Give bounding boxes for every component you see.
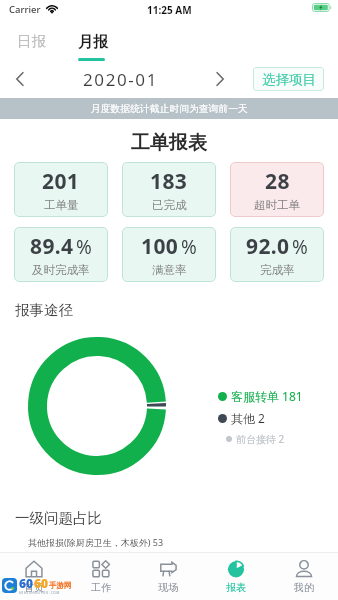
staticText: 超时工单	[254, 198, 300, 212]
button[interactable]: 报表	[202, 553, 270, 600]
staticText: 其他报损(除厨房卫生，木板外) 53	[28, 536, 164, 548]
staticText: 92.0	[246, 232, 290, 261]
staticText: 201	[42, 167, 80, 196]
staticText: 89.4	[30, 232, 74, 261]
button[interactable]: 28	[230, 162, 324, 217]
button[interactable]: 100	[122, 227, 216, 282]
staticText: 工单量	[44, 198, 79, 212]
button[interactable]: 现场	[134, 553, 202, 600]
staticText: 100	[141, 232, 179, 261]
staticText: 183	[150, 167, 188, 196]
button[interactable]: 201	[14, 162, 108, 217]
button[interactable]: 首页	[0, 553, 67, 600]
button[interactable]: 日报	[0, 26, 63, 56]
button[interactable]: 92.0	[230, 227, 324, 282]
staticText: %	[76, 234, 92, 260]
staticText: 6 0 6 0 S H O U Y O U . C O M	[19, 591, 60, 595]
staticText: 现场	[158, 581, 178, 594]
button[interactable]: 我的	[270, 553, 338, 600]
button[interactable]: 上一月	[7, 66, 33, 92]
button[interactable]: 工作	[67, 553, 134, 600]
button[interactable]: 183	[122, 162, 216, 217]
staticText: 客服转单 181	[231, 388, 303, 404]
staticText: 11:25 AM	[147, 3, 192, 17]
staticText: 我的	[294, 581, 314, 594]
staticText: 首页	[24, 581, 44, 594]
staticText: 报表	[226, 581, 246, 594]
staticText: 工作	[91, 581, 111, 594]
staticText: 月度数据统计截止时间为查询前一天	[91, 103, 248, 115]
staticText: 完成率	[260, 263, 295, 277]
button[interactable]: 月报	[61, 27, 124, 57]
staticText: 满意率	[152, 263, 187, 277]
button[interactable]: 下一月	[207, 66, 233, 92]
staticText: 前台接待 2	[236, 432, 285, 446]
staticText: 其他 2	[231, 410, 265, 426]
staticText: 报事途径	[15, 301, 73, 319]
staticText: 工单报表	[131, 131, 207, 155]
button[interactable]: 89.4	[14, 227, 108, 282]
staticText: 28	[265, 167, 290, 196]
staticText: Carrier	[9, 3, 41, 16]
staticText: %	[181, 234, 197, 260]
staticText: 手游网	[49, 581, 72, 590]
staticText: 及时完成率	[32, 263, 90, 277]
button[interactable]: 选择项目	[253, 67, 324, 91]
staticText: 一级问题占比	[15, 509, 102, 527]
staticText: 60	[19, 575, 34, 591]
staticText: 2020-01	[83, 68, 159, 91]
staticText: %	[292, 234, 308, 260]
staticText: 已完成	[152, 198, 187, 212]
staticText: 选择项目	[262, 71, 316, 88]
staticText: 日报	[17, 32, 46, 50]
staticText: 60	[34, 575, 49, 591]
staticText: 月报	[78, 33, 108, 52]
